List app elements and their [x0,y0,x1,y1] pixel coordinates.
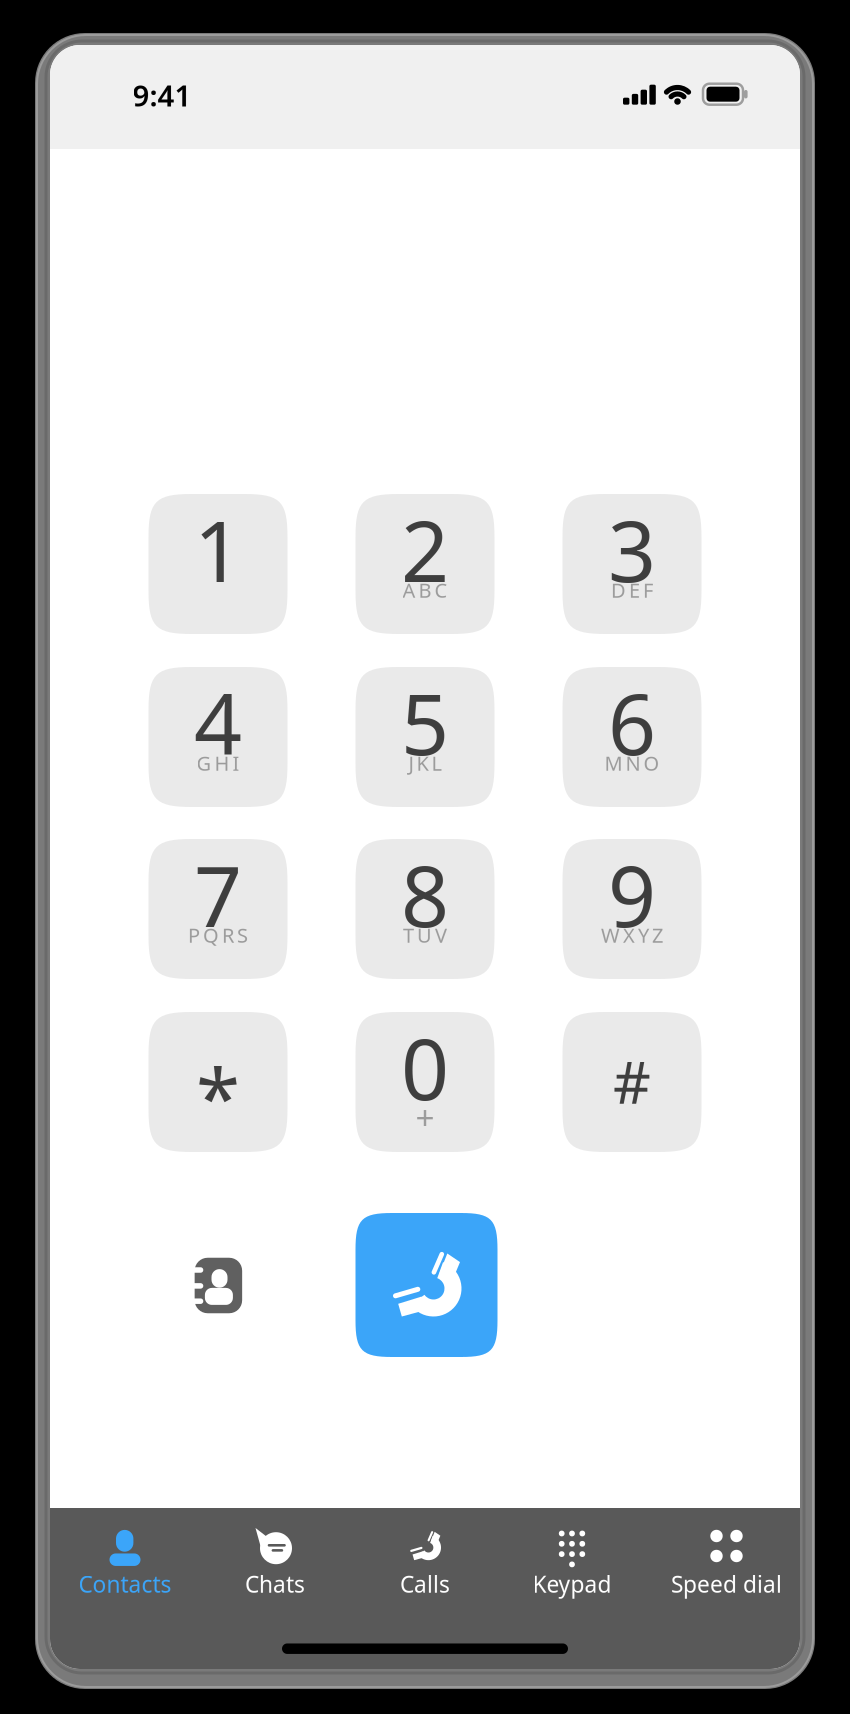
staticText: DEF [611,577,653,603]
button[interactable]: 3 [562,494,701,634]
button[interactable]: Speed dial [653,1508,799,1618]
staticText: 0 [401,1012,449,1123]
staticText: Keypad [532,1569,611,1599]
button[interactable]: Calls [352,1508,498,1618]
staticText: 5 [401,667,449,778]
button[interactable]: Keypad [499,1508,645,1618]
staticText: MNO [604,750,659,776]
staticText: Speed dial [671,1569,782,1599]
staticText: Calls [400,1569,450,1599]
button[interactable]: # [562,1012,701,1152]
button[interactable]: Chats [202,1508,348,1618]
button[interactable]: 8 [355,839,494,979]
staticText: Chats [245,1569,305,1599]
staticText: 2 [401,494,449,605]
staticText: 3 [608,494,656,605]
staticText: 1 [194,494,242,605]
button[interactable]: * [148,1012,287,1152]
button[interactable]: 5 [355,667,494,807]
button[interactable]: 6 [562,667,701,807]
staticText: + [415,1095,434,1139]
button[interactable]: Contacts list [183,1250,253,1320]
button[interactable]: 0 [355,1012,494,1152]
staticText: TUV [403,922,447,948]
staticText: ABC [402,577,447,603]
button[interactable]: 1 [148,494,287,634]
staticText: WXYZ [601,922,663,948]
button[interactable]: Call [355,1213,497,1357]
button[interactable]: 9 [562,839,701,979]
staticText: 8 [401,839,449,950]
button[interactable]: 4 [148,667,287,807]
staticText: 6 [608,667,656,778]
staticText: 9:41 [132,75,191,114]
staticText: * [196,1043,240,1149]
staticText: Contacts [78,1569,171,1599]
staticText: PQRS [188,922,248,948]
staticText: 9 [608,839,656,950]
button[interactable]: 2 [355,494,494,634]
staticText: 4 [194,667,242,778]
staticText: JKL [408,750,441,776]
button[interactable]: 7 [148,839,287,979]
staticText: GHI [196,750,239,776]
staticText: 7 [194,839,242,950]
staticText: # [613,1042,651,1120]
button[interactable]: Contacts [52,1508,198,1618]
